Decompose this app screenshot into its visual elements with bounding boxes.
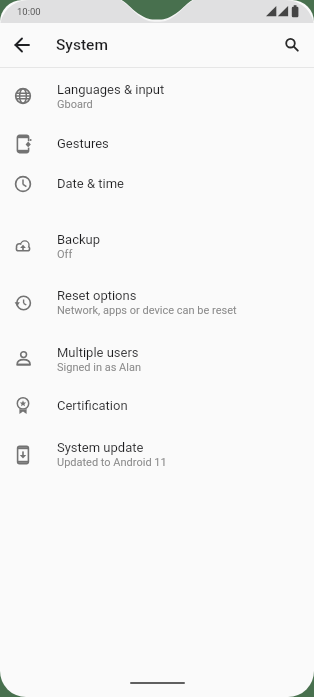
staticText: System update (57, 440, 144, 455)
button[interactable]: System update (0, 424, 314, 485)
staticText: Gboard (57, 98, 93, 111)
button[interactable]: Multiple users (0, 331, 314, 387)
staticText: Network, apps or device can be reset (57, 304, 237, 317)
button[interactable] (8, 31, 36, 59)
staticText: Reset options (57, 288, 137, 303)
button[interactable]: Languages & input (0, 68, 314, 124)
staticText: Signed in as Alan (57, 361, 141, 374)
button[interactable]: Gestures (0, 124, 314, 163)
staticText: Off (57, 248, 73, 261)
staticText: Languages & input (57, 82, 165, 97)
button[interactable]: Reset options (0, 274, 314, 331)
button[interactable]: Date & time (0, 163, 314, 204)
button[interactable]: Backup (0, 218, 314, 274)
staticText: System (56, 36, 108, 54)
button[interactable] (278, 31, 306, 59)
staticText: Date & time (57, 176, 124, 191)
staticText: Multiple users (57, 345, 139, 360)
staticText: Backup (57, 232, 101, 247)
button[interactable]: Certification (0, 387, 314, 424)
staticText: 10:00 (17, 6, 41, 17)
staticText: Updated to Android 11 (57, 456, 167, 469)
staticText: Certification (57, 398, 128, 413)
staticText: Gestures (57, 136, 109, 151)
